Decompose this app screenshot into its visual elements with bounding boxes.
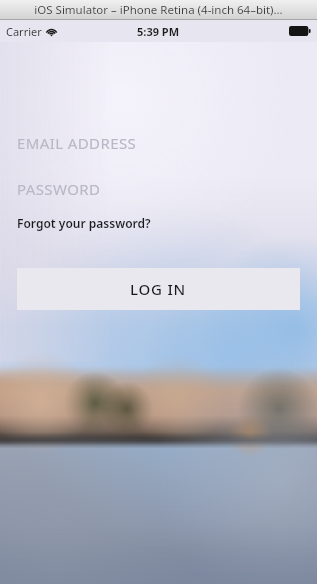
staticText: PASSWORD xyxy=(17,179,101,199)
staticText: EMAIL ADDRESS xyxy=(17,133,137,153)
button[interactable]: EMAIL ADDRESS xyxy=(0,128,317,158)
staticText: LOG IN xyxy=(130,279,187,299)
staticText: Carrier xyxy=(6,24,42,39)
button[interactable]: PASSWORD xyxy=(0,174,317,204)
button[interactable]: Forgot your password? xyxy=(17,212,151,234)
button[interactable]: LOG IN xyxy=(17,268,300,310)
staticText: iOS Simulator – iPhone Retina (4-inch 64… xyxy=(34,2,283,18)
staticText: Forgot your password? xyxy=(17,215,151,231)
staticText: 5:39 PM xyxy=(137,24,180,39)
